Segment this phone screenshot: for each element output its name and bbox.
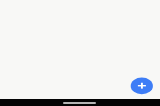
button[interactable]: Add [130, 77, 154, 95]
